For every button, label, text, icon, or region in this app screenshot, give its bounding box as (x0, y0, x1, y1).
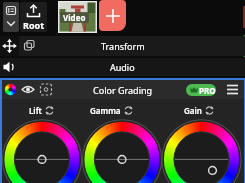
staticText: Color Grading (93, 84, 153, 96)
button[interactable]: Root (20, 2, 47, 32)
button[interactable] (3, 2, 19, 32)
staticText: PRO (199, 85, 216, 96)
staticText: Root (23, 19, 45, 31)
button[interactable] (99, 0, 126, 31)
staticText: Audio (110, 61, 135, 73)
button[interactable]: PRO (186, 84, 216, 96)
staticText: Video (63, 12, 86, 23)
staticText: Lift (29, 105, 42, 116)
button[interactable]: Video (58, 1, 97, 33)
button[interactable]: Color Grading (2, 80, 244, 99)
staticText: Gain (184, 105, 202, 116)
staticText: Transform (101, 40, 145, 52)
button[interactable]: Transform (0, 36, 245, 56)
staticText: Gamma (90, 105, 121, 116)
button[interactable]: Audio (0, 58, 245, 76)
